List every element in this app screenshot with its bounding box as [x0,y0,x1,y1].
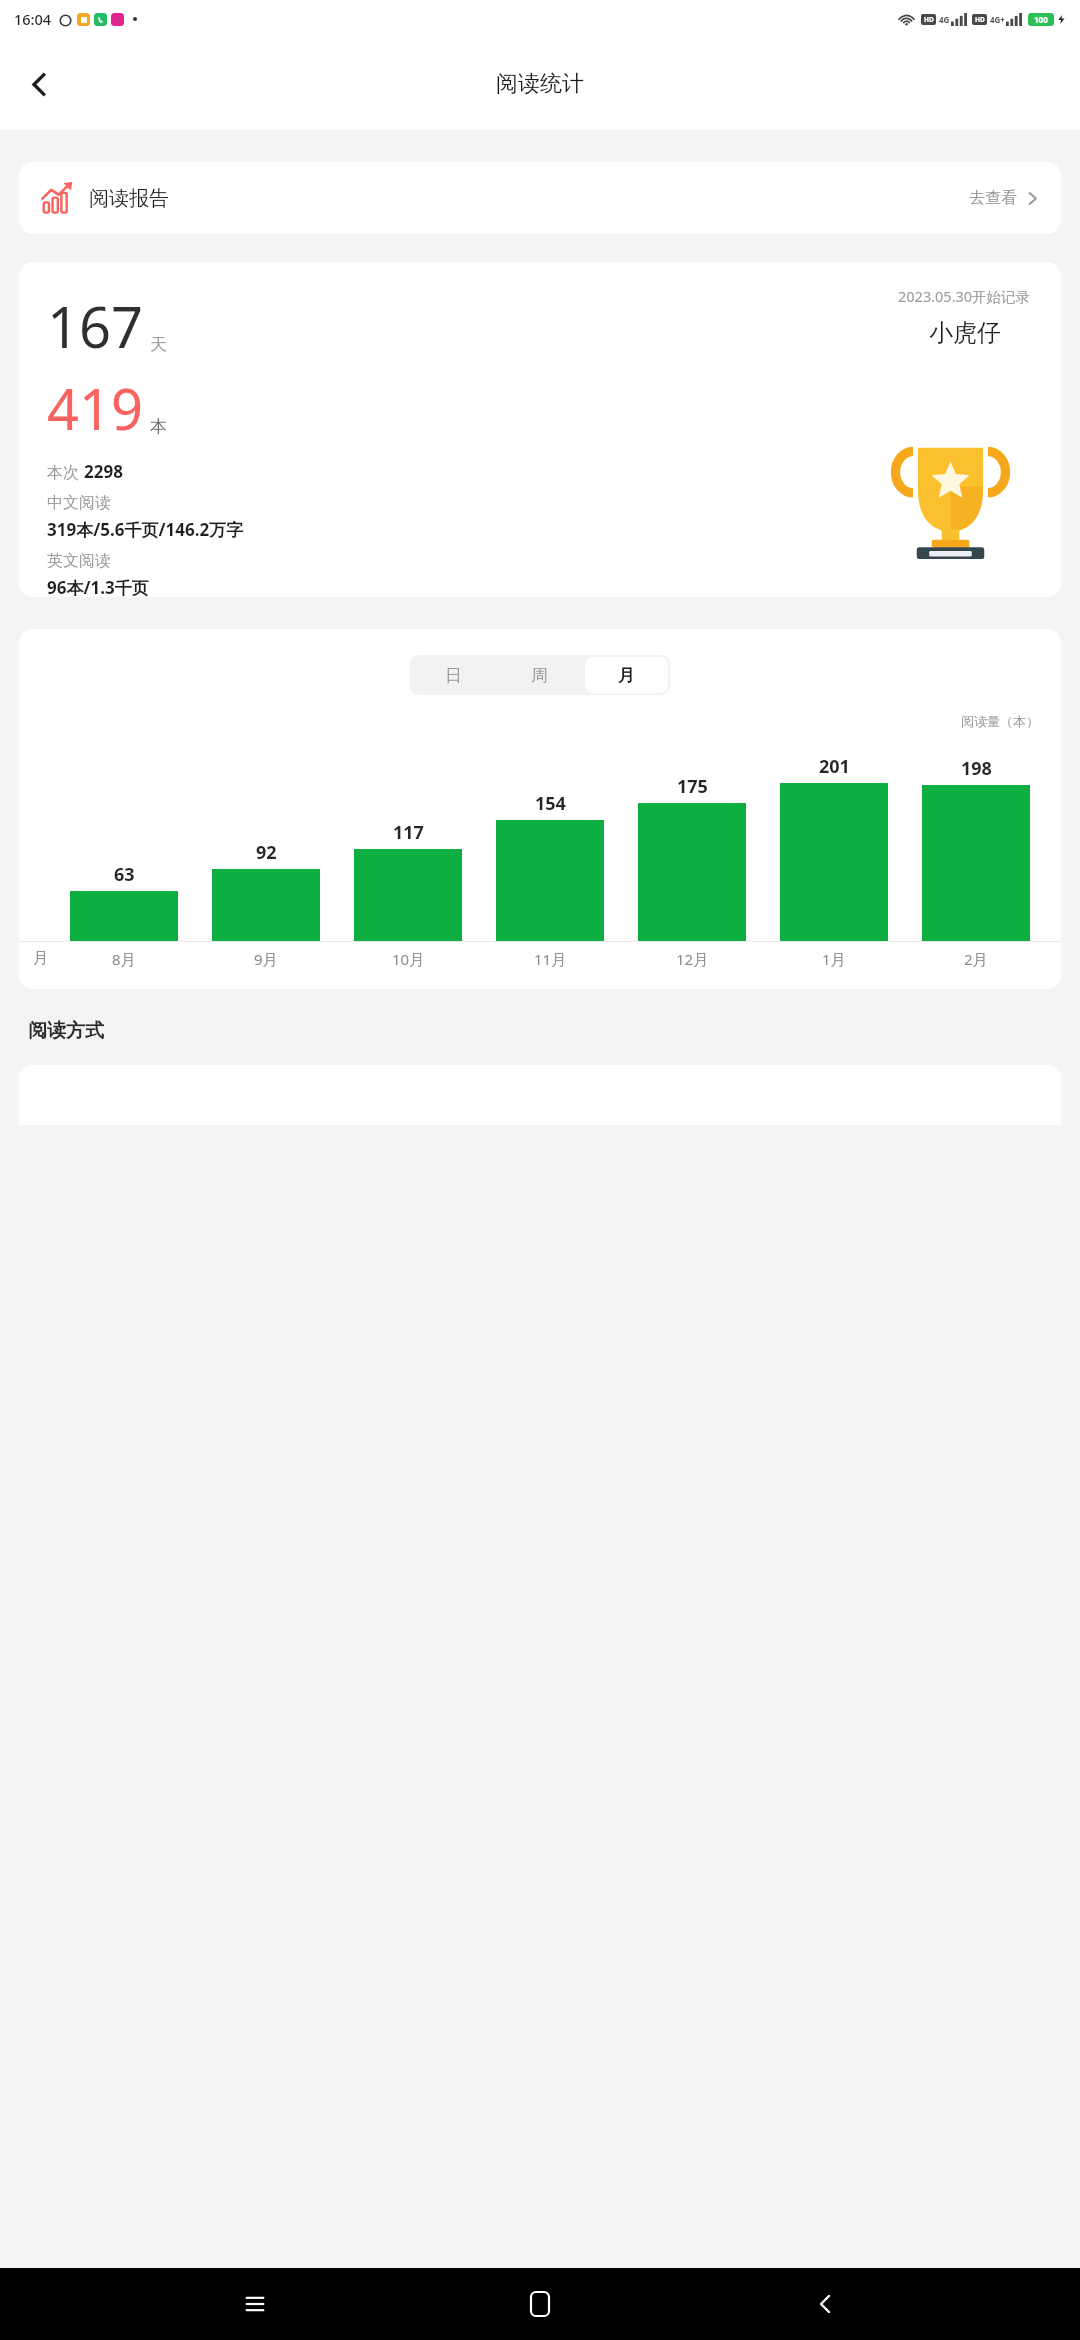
staticText: 2月 [964,949,988,969]
button[interactable]: 2023.05.30开始记录 [19,262,1061,597]
staticText: 2298 [84,460,123,483]
staticText: 小虎仔 [929,318,1001,348]
staticText: 175 [677,774,708,799]
button[interactable]: 月 [585,657,668,693]
staticText: 319本/5.6千页/146.2万字 [47,518,244,541]
staticText: 8月 [112,949,136,969]
staticText: 周 [531,665,548,686]
staticText: 198 [961,756,992,781]
staticText: 阅读量（本） [961,713,1039,729]
staticText: 4G [939,14,950,25]
staticText: 天 [150,334,167,355]
staticText: HD [975,15,985,24]
staticText: 去查看 [969,188,1017,208]
staticText: 阅读统计 [496,70,584,98]
button[interactable]: Back [10,55,68,113]
staticText: 96本/1.3千页 [47,576,149,597]
staticText: 1月 [822,949,846,969]
button[interactable]: Home [510,2274,570,2334]
staticText: 中文阅读 [47,493,111,513]
staticText: 2023.05.30开始记录 [898,286,1031,306]
button[interactable]: 周 [498,657,581,693]
staticText: 日 [445,665,462,686]
staticText: 12月 [676,949,709,969]
staticText: 154 [535,791,566,816]
staticText: 100 [1034,14,1048,25]
staticText: 63 [114,862,135,887]
button[interactable]: 日 [412,657,494,693]
staticText: 10月 [392,949,425,969]
button[interactable]: Back [795,2274,855,2334]
staticText: 本次 [47,461,84,483]
staticText: 11月 [534,949,567,969]
staticText: 英文阅读 [47,551,111,571]
staticText: 9月 [254,949,278,969]
staticText: 4G+ [990,14,1005,25]
button[interactable]: 阅读报告 [19,162,1061,234]
staticText: 167 [47,288,144,364]
staticText: 月 [618,665,635,686]
staticText: 92 [256,840,277,865]
staticText: 16:04 [14,9,52,29]
staticText: 201 [819,754,850,779]
staticText: 阅读方式 [28,1019,104,1043]
staticText: 419 [47,370,144,446]
staticText: 月 [33,949,48,968]
button[interactable]: Recent apps [225,2274,285,2334]
staticText: HD [924,15,934,24]
staticText: 本 [150,416,167,437]
staticText: 阅读报告 [89,186,169,211]
staticText: 117 [393,820,424,845]
